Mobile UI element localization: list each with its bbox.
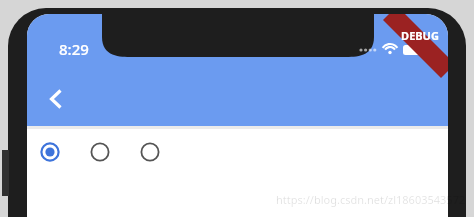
staticText: https://blog.csdn.net/zl18603543572 <box>276 192 466 207</box>
button[interactable]: Option <box>130 132 170 172</box>
staticText: DEBUG <box>391 28 449 48</box>
button[interactable]: Option selected <box>30 132 70 172</box>
staticText: 8:29 <box>59 39 89 59</box>
button[interactable]: Option <box>80 132 120 172</box>
button[interactable]: Back <box>38 81 74 117</box>
